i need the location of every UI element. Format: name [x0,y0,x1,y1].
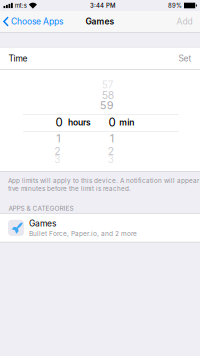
button[interactable]: Games [0,214,200,242]
staticText: five minutes before the limit is reached… [8,185,131,193]
staticText: 0 [108,115,115,129]
staticText: 89% [168,2,182,9]
staticText: Time [8,53,27,64]
button[interactable]: Add [168,11,200,32]
staticText: 1 [110,132,114,145]
staticText: Set [178,53,191,64]
staticText: mt:s [15,2,27,9]
staticText: 3:44 PM [90,2,115,9]
button[interactable]: Time [0,47,200,69]
staticText: App limits will apply to this device. A … [8,177,199,185]
staticText: 57 [102,79,114,91]
staticText: 59 [100,99,114,112]
staticText: 0 [55,115,62,129]
staticText: Games [29,218,56,229]
staticText: APPS & CATEGORIES [8,204,73,212]
staticText: 1 [56,132,60,145]
staticText: 3 [54,153,60,165]
staticText: Games [85,16,114,27]
staticText: hours [68,117,91,128]
staticText: Bullet Force, Paper.io, and 2 more [29,230,137,237]
staticText: min [119,117,134,128]
staticText: 2 [108,145,114,158]
staticText: 3 [108,153,114,165]
button[interactable]: Choose Apps [0,11,67,32]
staticText: Choose Apps [11,16,63,27]
staticText: 58 [102,89,114,101]
staticText: Add [176,16,192,27]
staticText: 2 [54,145,60,158]
